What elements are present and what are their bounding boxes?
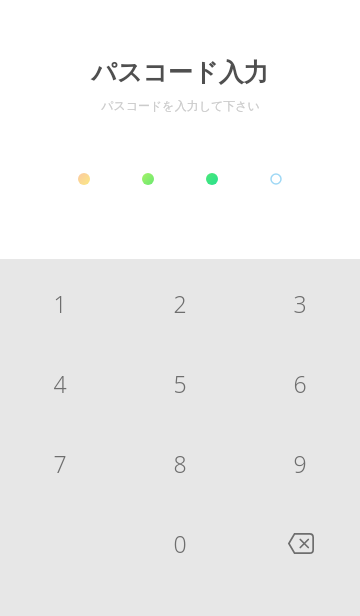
- staticText: 5: [173, 368, 187, 399]
- button[interactable]: 3: [240, 263, 360, 343]
- button[interactable]: 9: [240, 423, 360, 503]
- button[interactable]: 1: [0, 263, 120, 343]
- staticText: 6: [293, 368, 307, 399]
- staticText: 1: [53, 288, 67, 319]
- button[interactable]: 2: [120, 263, 240, 343]
- staticText: 7: [53, 448, 67, 479]
- staticText: 3: [293, 288, 307, 319]
- button[interactable]: 6: [240, 343, 360, 423]
- button[interactable]: Backspace: [240, 503, 360, 583]
- button[interactable]: 0: [120, 503, 240, 583]
- staticText: 9: [293, 448, 307, 479]
- button[interactable]: 8: [120, 423, 240, 503]
- staticText: パスコードを入力して下さい: [101, 98, 260, 113]
- staticText: 2: [173, 288, 187, 319]
- staticText: 8: [173, 448, 187, 479]
- staticText: パスコード入力: [91, 57, 269, 88]
- staticText: 0: [173, 528, 187, 559]
- button[interactable]: 5: [120, 343, 240, 423]
- button[interactable]: 7: [0, 423, 120, 503]
- button[interactable]: 4: [0, 343, 120, 423]
- staticText: 4: [53, 368, 67, 399]
